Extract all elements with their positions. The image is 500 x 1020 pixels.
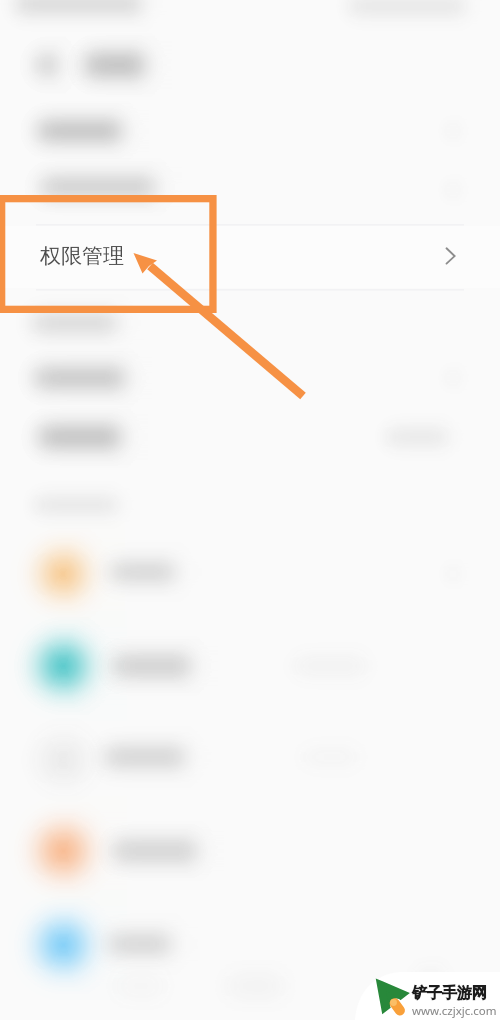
staticText: 铲子手游网 (412, 984, 487, 1003)
button[interactable]: 权限管理 (0, 226, 500, 286)
staticText: 权限管理 (40, 243, 124, 269)
other: Open permission management (445, 246, 457, 266)
staticText: www.czjxjc.com (412, 1003, 497, 1019)
